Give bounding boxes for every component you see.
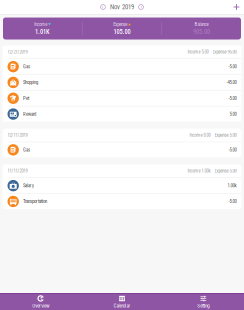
- staticText: 105.00: [113, 28, 130, 36]
- staticText: Income 1.00k: [187, 168, 210, 174]
- button[interactable]: Previous month: [99, 3, 107, 11]
- staticText: Expense: [113, 21, 127, 27]
- staticText: -5.00: [228, 95, 236, 101]
- staticText: -45.00: [226, 80, 236, 85]
- button[interactable]: Gas: [2, 142, 241, 157]
- staticText: Reward: [23, 111, 36, 117]
- button[interactable]: Salary: [2, 178, 241, 194]
- staticText: Expense 5.00: [214, 168, 236, 174]
- staticText: Expense 95.00: [212, 49, 236, 55]
- staticText: -5.00: [228, 199, 236, 204]
- button[interactable]: Shopping: [2, 75, 241, 91]
- staticText: 11/11/2019: [7, 168, 27, 174]
- staticText: 1.01K: [35, 28, 50, 36]
- staticText: Income: [34, 21, 47, 27]
- staticText: Expense 5.00: [214, 132, 236, 138]
- staticText: Balance: [194, 21, 208, 27]
- staticText: Shopping: [23, 80, 38, 85]
- staticText: Calendar: [113, 303, 130, 309]
- staticText: 5.00: [229, 111, 236, 117]
- button[interactable]: Pet: [2, 91, 241, 106]
- staticText: 1.00k: [227, 183, 236, 188]
- button[interactable]: Calendar: [81, 293, 163, 310]
- staticText: 905.00: [193, 28, 210, 36]
- button[interactable]: Overview: [0, 293, 81, 310]
- staticText: 12/11/2019: [7, 132, 27, 138]
- staticText: Gas: [23, 64, 30, 69]
- staticText: 12/21/2019: [7, 49, 27, 55]
- button[interactable]: Gas: [2, 59, 241, 75]
- staticText: Salary: [23, 183, 34, 188]
- button[interactable]: Transportation: [2, 194, 241, 209]
- staticText: Income 5.00: [187, 49, 208, 55]
- staticText: Income 0.00: [189, 132, 210, 138]
- staticText: -5.00: [228, 147, 236, 153]
- staticText: -5.00: [228, 64, 236, 69]
- button[interactable]: Next month: [137, 3, 145, 11]
- staticText: Overview: [32, 303, 49, 309]
- staticText: Pet: [23, 95, 29, 101]
- staticText: Transportation: [23, 199, 47, 204]
- button[interactable]: Setting: [163, 293, 244, 310]
- staticText: Nov 2019: [110, 3, 134, 11]
- button[interactable]: Reward: [2, 106, 241, 122]
- staticText: Setting: [197, 303, 209, 309]
- staticText: Gas: [23, 147, 30, 153]
- button[interactable]: Add transaction: [230, 1, 242, 13]
